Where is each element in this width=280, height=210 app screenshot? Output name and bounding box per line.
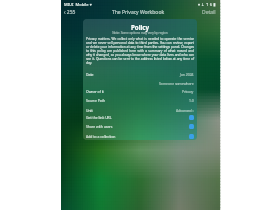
staticText: Date xyxy=(86,72,94,77)
button[interactable]: Add to a collection xyxy=(83,132,197,140)
staticText: 1.0 xyxy=(189,98,194,103)
staticText: Privacy xyxy=(182,89,194,94)
button[interactable]: Someone somewhere xyxy=(83,79,197,87)
staticText: ▾ ↓ ↑ ὏6 ▮ xyxy=(198,2,216,7)
staticText: Privacy matters. We collect only what is… xyxy=(86,37,194,65)
button[interactable]: Get the link URL xyxy=(83,113,197,122)
staticText: Detail xyxy=(202,9,216,16)
staticText: Owner of it xyxy=(86,89,104,94)
staticText: Advanced › xyxy=(176,108,194,113)
staticText: Add to a collection xyxy=(86,134,116,139)
staticText: Policy xyxy=(83,23,197,31)
button[interactable]: Share with users xyxy=(83,122,197,131)
button[interactable]: Back xyxy=(64,9,76,16)
staticText: Someone somewhere xyxy=(159,81,194,86)
button[interactable]: Unit xyxy=(83,106,197,114)
button[interactable]: Owner of it xyxy=(83,87,197,95)
staticText: ‹ 255 xyxy=(64,9,76,16)
staticText: MIUI Mobile ▾ xyxy=(64,2,92,7)
staticText: The Privacy Workbook xyxy=(112,9,165,16)
staticText: Jan 2024 xyxy=(180,72,194,77)
button[interactable]: Date xyxy=(83,70,197,78)
button[interactable]: Detail xyxy=(202,9,216,16)
button[interactable]: Source Path xyxy=(83,96,197,104)
staticText: Source Path xyxy=(86,98,106,103)
staticText: Unit xyxy=(86,108,93,113)
staticText: Share with users xyxy=(86,124,113,129)
staticText: Get the link URL xyxy=(86,115,112,120)
staticText: Note: Some options may vary by region xyxy=(83,31,197,35)
